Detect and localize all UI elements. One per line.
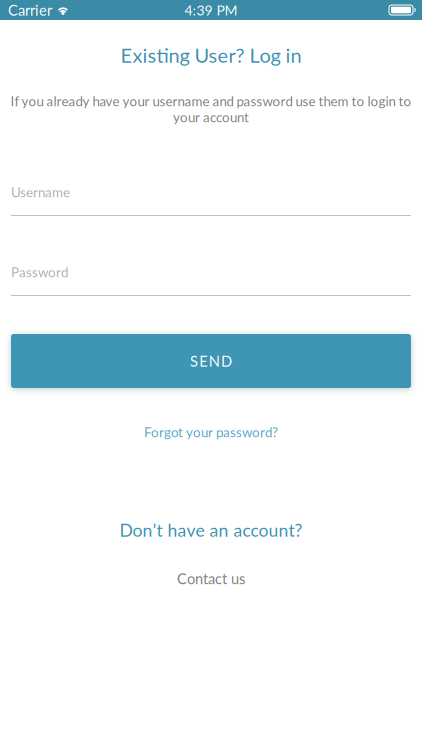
button[interactable]: Forgot your password?: [144, 425, 278, 439]
button[interactable]: Username: [11, 186, 411, 216]
button[interactable]: Password: [11, 266, 411, 296]
staticText: Contact us: [177, 570, 245, 587]
button[interactable]: Don’t have an account?: [119, 521, 302, 539]
staticText: SEND: [190, 352, 232, 370]
staticText: Forgot your password?: [144, 424, 278, 440]
staticText: your account: [173, 109, 249, 125]
staticText: Username: [11, 184, 70, 200]
staticText: If you already have your username and pa…: [10, 93, 411, 109]
staticText: 4:39 PM: [184, 2, 237, 18]
button[interactable]: SEND: [11, 334, 411, 388]
staticText: Existing User? Log in: [120, 43, 301, 67]
staticText: Password: [11, 264, 68, 280]
button[interactable]: Contact us: [177, 571, 245, 586]
staticText: Don’t have an account?: [119, 519, 302, 540]
staticText: Carrier: [8, 1, 52, 19]
